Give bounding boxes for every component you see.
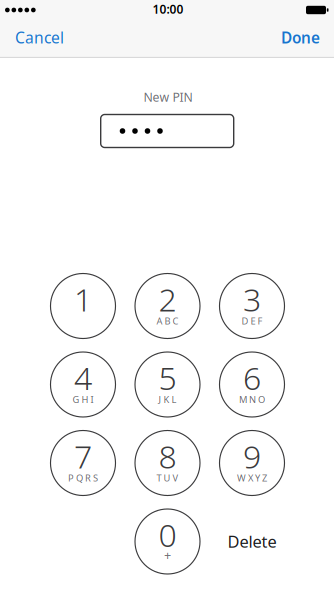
staticText: T U V: [156, 472, 178, 484]
staticText: Delete: [227, 530, 276, 553]
staticText: A B C: [156, 315, 178, 327]
staticText: New PIN: [143, 89, 192, 105]
staticText: 5: [158, 356, 176, 399]
staticText: P Q R S: [68, 472, 98, 484]
staticText: 2: [158, 277, 176, 321]
button[interactable]: Done: [269, 19, 334, 58]
staticText: 0: [158, 513, 176, 556]
staticText: D E F: [241, 315, 262, 327]
button[interactable]: 1: [44, 270, 122, 342]
staticText: J K L: [158, 393, 176, 406]
button[interactable]: 4: [44, 348, 122, 420]
button[interactable]: Cancel: [0, 19, 76, 58]
button[interactable]: 9: [213, 427, 291, 499]
staticText: +: [164, 546, 171, 564]
staticText: 3: [243, 277, 261, 321]
button[interactable]: 6: [213, 348, 291, 420]
staticText: 7: [74, 434, 92, 478]
staticText: Cancel: [15, 27, 64, 48]
staticText: 8: [158, 434, 176, 478]
staticText: M N O: [239, 393, 265, 406]
staticText: 10:00: [152, 1, 183, 17]
button[interactable]: 2: [128, 270, 206, 342]
staticText: Done: [281, 27, 320, 48]
staticText: 9: [243, 434, 261, 478]
button[interactable]: 0: [128, 505, 206, 577]
button[interactable]: Delete: [211, 517, 293, 565]
staticText: G H I: [72, 393, 93, 406]
staticText: W X Y Z: [237, 472, 267, 484]
button[interactable]: 5: [128, 348, 206, 420]
staticText: 6: [243, 356, 261, 399]
staticText: 1: [74, 277, 92, 321]
staticText: 4: [74, 356, 92, 399]
button[interactable]: 3: [213, 270, 291, 342]
button[interactable]: 7: [44, 427, 122, 499]
button[interactable]: 8: [128, 427, 206, 499]
